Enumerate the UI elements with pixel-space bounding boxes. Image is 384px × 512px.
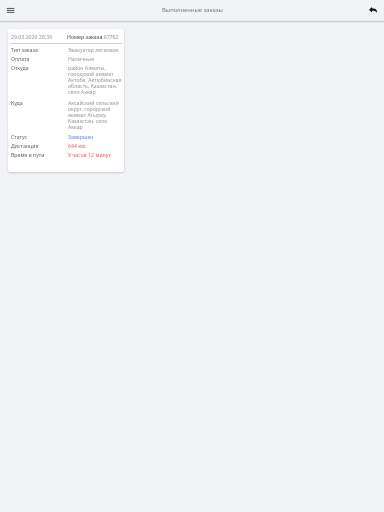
staticText: Время в пути bbox=[11, 152, 68, 158]
staticText: Тип заказа bbox=[11, 47, 68, 53]
staticText: 644 км. bbox=[68, 143, 122, 149]
staticText: Номер заказа 67762 bbox=[67, 34, 119, 40]
staticText: район Алматы, городской акимат Актобе, А… bbox=[68, 65, 122, 95]
staticText: 9 часов 12 минут bbox=[68, 152, 122, 158]
staticText: Завершен bbox=[68, 134, 122, 140]
staticText: Статус bbox=[11, 134, 68, 140]
staticText: Выполненные заказы bbox=[162, 6, 223, 14]
staticText: 29.03.2020 20:39 bbox=[11, 34, 53, 40]
staticText: Эвакуатор легковая bbox=[68, 47, 122, 53]
staticText: Аксайский сельский округ, городской аким… bbox=[68, 100, 122, 130]
button[interactable]: Back bbox=[363, 0, 384, 21]
staticText: Наличные bbox=[68, 56, 122, 62]
staticText: Оплата bbox=[11, 56, 68, 62]
button[interactable]: 29.03.2020 20:39 bbox=[8, 29, 124, 172]
staticText: Откуда bbox=[11, 65, 68, 71]
button[interactable]: Menu bbox=[0, 0, 21, 21]
staticText: Дистанция bbox=[11, 143, 68, 149]
staticText: Куда bbox=[11, 100, 68, 106]
